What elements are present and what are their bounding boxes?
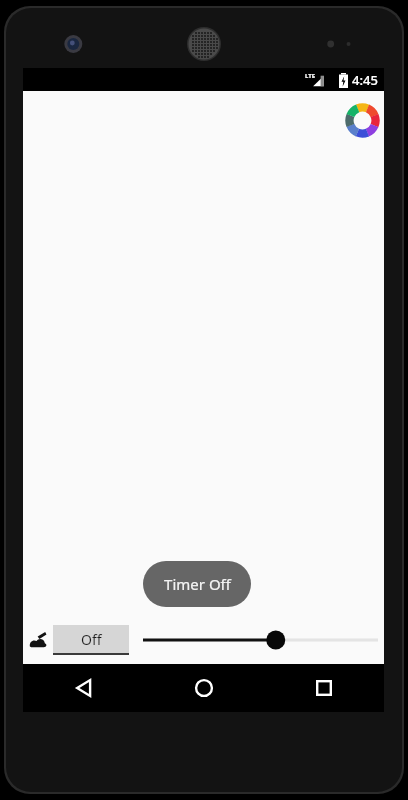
button[interactable]: Mode [27, 629, 49, 651]
button[interactable]: Timer Off [143, 561, 251, 607]
staticText: Off [81, 630, 102, 649]
staticText: 4:45 [352, 71, 378, 89]
button[interactable]: Home [144, 664, 264, 712]
button[interactable]: Colour picker [344, 102, 381, 139]
staticText: Timer Off [164, 574, 231, 594]
button[interactable]: Off [53, 625, 129, 655]
staticText: LTE [305, 72, 316, 80]
button[interactable]: Brightness [143, 627, 378, 653]
button[interactable]: Back [23, 664, 144, 712]
button[interactable]: Recent apps [264, 664, 384, 712]
